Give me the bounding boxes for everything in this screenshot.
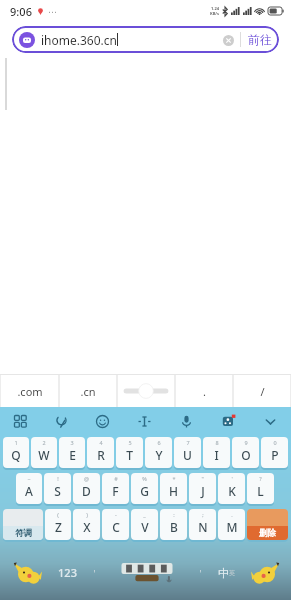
button[interactable]: ( [45, 509, 71, 542]
staticText: 1 [14, 439, 18, 446]
staticText: T [126, 447, 133, 463]
button[interactable]: ~ [16, 473, 42, 506]
button[interactable]: . [176, 375, 232, 407]
staticText: 英 [229, 569, 235, 577]
button[interactable]: 符调 [3, 509, 43, 542]
button[interactable]: .com [1, 375, 58, 407]
staticText: W [38, 447, 50, 463]
button[interactable]: Voice input [165, 407, 207, 435]
button[interactable]: ' [218, 473, 245, 506]
staticText: D [82, 483, 91, 499]
button[interactable]: ? [247, 473, 274, 506]
staticText: Z [55, 519, 62, 535]
staticText: Q [11, 447, 21, 463]
button[interactable]: Edit text [123, 407, 165, 435]
button[interactable]: Apps [0, 407, 41, 435]
staticText: 符调 [15, 528, 32, 539]
staticText: J [201, 483, 205, 499]
button[interactable]: . [218, 509, 245, 542]
staticText: V [141, 519, 149, 535]
staticText: ' [231, 475, 233, 482]
button[interactable]: Clear [222, 34, 234, 46]
staticText: KB/s [210, 11, 219, 16]
staticText: * [172, 475, 176, 482]
staticText: R [97, 447, 105, 463]
button[interactable]: Stickers [207, 407, 249, 435]
button[interactable]: 1 [3, 437, 29, 470]
staticText: A [25, 483, 33, 499]
button[interactable]: 9 [232, 437, 259, 470]
button[interactable]: 删除 [247, 509, 288, 542]
button[interactable]: ) [73, 509, 100, 542]
staticText: ! [57, 475, 59, 482]
staticText: " [201, 475, 204, 482]
button[interactable]: 8 [203, 437, 230, 470]
staticText: 2 [42, 439, 46, 446]
staticText: 前往 [248, 32, 272, 47]
button[interactable]: 3 [59, 437, 85, 470]
button[interactable]: Hide keyboard [249, 407, 291, 435]
staticText: 6 [157, 439, 161, 446]
button[interactable]: / [234, 375, 290, 407]
button[interactable]: 6 [145, 437, 172, 470]
button[interactable]: ! [44, 473, 71, 506]
button[interactable]: ; [189, 509, 216, 542]
staticText: ( [57, 511, 59, 518]
button[interactable]: 0 [261, 437, 288, 470]
staticText: ~ [27, 475, 31, 482]
staticText: S [54, 483, 61, 499]
staticText: ⋯ [48, 7, 57, 17]
button[interactable]: .cn [60, 375, 116, 407]
staticText: . [231, 511, 233, 518]
button[interactable]: Move cursor [118, 375, 174, 407]
button[interactable]: @ [73, 473, 100, 506]
staticText: 123 [58, 565, 77, 580]
button[interactable]: _ [131, 509, 158, 542]
button[interactable]: Theme mascot [2, 545, 51, 600]
staticText: # [114, 475, 118, 482]
staticText: K [228, 483, 236, 499]
button[interactable]: ' [190, 545, 210, 600]
staticText: 7 [186, 439, 190, 446]
button[interactable]: Theme mascot right [243, 545, 289, 600]
staticText: .cn [80, 384, 96, 399]
button[interactable]: Emoji [82, 407, 123, 435]
staticText: @ [84, 475, 89, 482]
staticText: ihome.360.cn [41, 32, 117, 48]
staticText: C [112, 519, 120, 535]
staticText: M [226, 519, 238, 535]
button[interactable]: 123 [51, 545, 84, 600]
staticText: F [112, 483, 119, 499]
staticText: 9 [244, 439, 248, 446]
button[interactable]: ' [84, 545, 104, 600]
staticText: 3 [70, 439, 74, 446]
button[interactable]: 7 [174, 437, 201, 470]
staticText: Y [155, 447, 163, 463]
staticText: U [183, 447, 192, 463]
button[interactable]: - [102, 509, 129, 542]
button[interactable]: " [189, 473, 216, 506]
button[interactable]: 中 [210, 545, 243, 600]
button[interactable]: 2 [31, 437, 57, 470]
button[interactable]: # [102, 473, 129, 506]
button[interactable]: ihome.360.cn [12, 26, 279, 53]
staticText: ' [93, 567, 96, 579]
staticText: H [169, 483, 178, 499]
button[interactable]: 4 [87, 437, 114, 470]
button[interactable]: : [160, 509, 187, 542]
staticText: 1.24 [211, 6, 219, 11]
button[interactable]: 前往 [248, 32, 272, 47]
button[interactable]: Clip [41, 407, 82, 435]
button[interactable]: % [131, 473, 158, 506]
staticText: ' [199, 567, 202, 579]
staticText: . [203, 384, 206, 399]
button[interactable]: Space [104, 545, 190, 600]
button[interactable]: 5 [116, 437, 143, 470]
staticText: G [140, 483, 149, 499]
staticText: 5 [128, 439, 132, 446]
staticText: L [257, 483, 264, 499]
staticText: 0 [273, 439, 277, 446]
button[interactable]: * [160, 473, 187, 506]
staticText: % [142, 475, 147, 482]
staticText: / [260, 384, 265, 399]
